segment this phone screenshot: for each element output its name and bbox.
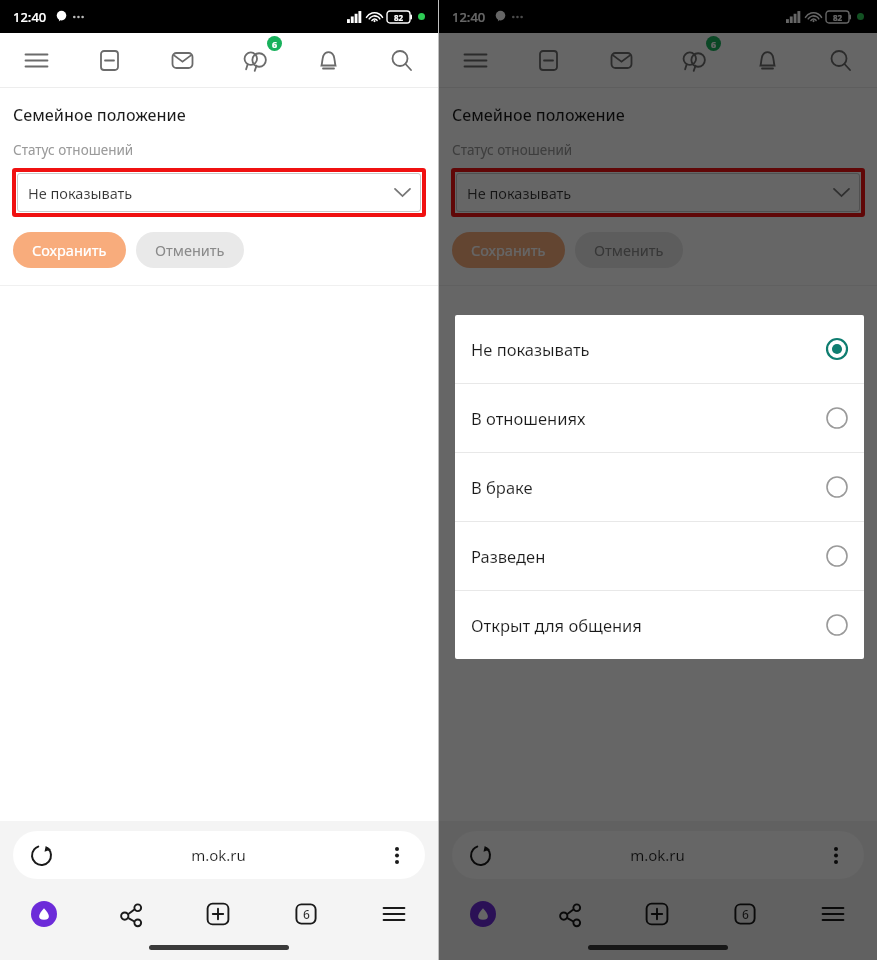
button[interactable]: В отношениях — [455, 384, 864, 452]
staticText: Сохранить — [471, 240, 546, 260]
button[interactable]: Assistant — [463, 894, 503, 934]
button[interactable]: Reload — [13, 831, 425, 879]
staticText: 12:40 — [452, 8, 486, 26]
button[interactable]: Notifications — [292, 33, 365, 87]
button[interactable]: Messages — [146, 33, 219, 87]
button[interactable]: Share — [111, 894, 151, 934]
button[interactable]: Share — [550, 894, 590, 934]
button[interactable]: Сохранить — [13, 232, 126, 268]
button[interactable]: Discussions — [233, 37, 279, 83]
button[interactable]: Открыт для общения — [455, 591, 864, 659]
button[interactable]: Menu — [813, 894, 853, 934]
button[interactable]: Feed — [512, 33, 585, 87]
staticText: Не показывать — [467, 183, 572, 203]
staticText: Открыт для общения — [471, 614, 642, 636]
staticText: Отменить — [155, 240, 225, 260]
staticText: Не показывать — [28, 183, 133, 203]
button[interactable]: Search — [365, 33, 438, 87]
staticText: 6 — [711, 38, 717, 50]
button[interactable]: More options — [822, 841, 850, 869]
button[interactable]: Reload — [466, 841, 494, 869]
button[interactable]: Search — [804, 33, 877, 87]
staticText: 6 — [272, 38, 278, 50]
staticText: Не показывать — [471, 338, 590, 360]
button[interactable]: Сохранить — [452, 232, 565, 268]
button[interactable]: Отменить — [136, 232, 244, 268]
staticText: В отношениях — [471, 407, 586, 429]
staticText: m.ok.ru — [630, 845, 685, 865]
staticText: 12:40 — [13, 8, 47, 26]
staticText: Семейное положение — [13, 104, 186, 126]
button[interactable]: Messages — [585, 33, 658, 87]
staticText: Сохранить — [32, 240, 107, 260]
staticText: Семейное положение — [452, 104, 625, 126]
staticText: Статус отношений — [13, 141, 134, 159]
button[interactable]: Tabs — [725, 894, 765, 934]
button[interactable]: Discussions — [672, 37, 718, 83]
button[interactable]: Notifications — [731, 33, 804, 87]
button[interactable]: В браке — [455, 453, 864, 521]
button[interactable]: Не показывать — [455, 315, 864, 383]
button[interactable]: Menu — [439, 33, 512, 87]
staticText: 6 — [742, 906, 749, 922]
button[interactable]: Assistant — [24, 894, 64, 934]
staticText: Разведен — [471, 545, 546, 567]
button[interactable]: Reload — [452, 831, 864, 879]
button[interactable]: Tabs — [286, 894, 326, 934]
button[interactable]: Menu — [374, 894, 414, 934]
button[interactable]: Menu — [0, 33, 73, 87]
staticText: Отменить — [594, 240, 664, 260]
button[interactable]: More options — [383, 841, 411, 869]
button[interactable]: Разведен — [455, 522, 864, 590]
button[interactable]: Reload — [27, 841, 55, 869]
staticText: 82 — [833, 12, 843, 23]
staticText: m.ok.ru — [191, 845, 246, 865]
staticText: В браке — [471, 476, 533, 498]
button[interactable]: Отменить — [575, 232, 683, 268]
button[interactable]: New tab — [637, 894, 677, 934]
staticText: 6 — [303, 906, 310, 922]
staticText: Статус отношений — [452, 141, 573, 159]
button[interactable]: Feed — [73, 33, 146, 87]
button[interactable]: Не показывать — [17, 173, 421, 212]
staticText: 82 — [394, 12, 404, 23]
button[interactable]: Не показывать — [456, 173, 860, 212]
button[interactable]: New tab — [198, 894, 238, 934]
